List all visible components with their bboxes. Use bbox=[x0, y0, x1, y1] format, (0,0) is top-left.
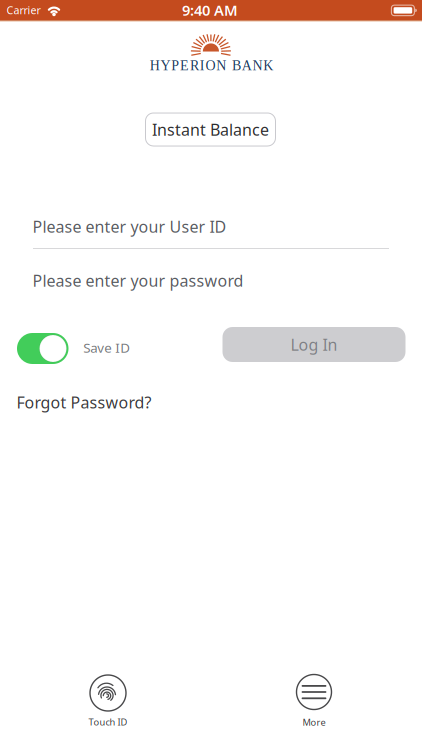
button[interactable]: Touch ID bbox=[84, 671, 132, 731]
button[interactable]: Instant Balance bbox=[145, 113, 275, 146]
staticText: Save ID bbox=[83, 339, 130, 356]
button[interactable]: More bbox=[290, 671, 338, 729]
button[interactable]: Save ID bbox=[17, 333, 68, 364]
staticText: More bbox=[302, 716, 325, 728]
staticText: Log In bbox=[290, 334, 337, 355]
staticText: HYPERION BANK bbox=[150, 58, 273, 73]
button[interactable]: Forgot Password? bbox=[16, 392, 151, 413]
staticText: Forgot Password? bbox=[16, 392, 151, 413]
staticText: Instant Balance bbox=[152, 119, 269, 140]
staticText: Touch ID bbox=[88, 716, 127, 728]
button[interactable]: Log In bbox=[222, 327, 405, 362]
staticText: Please enter your password bbox=[32, 270, 243, 291]
staticText: Please enter your User ID bbox=[32, 216, 226, 237]
staticText: Carrier bbox=[6, 3, 40, 17]
staticText: 9:40 AM bbox=[182, 0, 238, 20]
